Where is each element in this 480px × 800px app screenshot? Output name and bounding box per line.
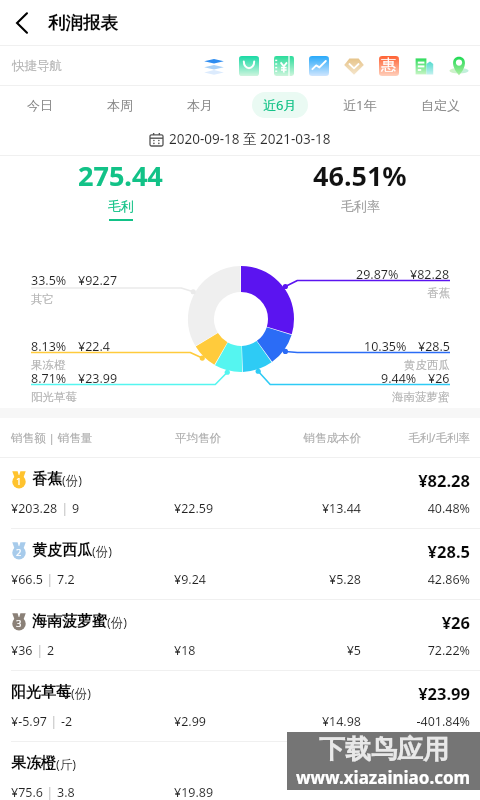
staticText: 7.2 — [57, 571, 75, 588]
staticText: 本周 — [107, 97, 133, 113]
staticText: 近6月 — [263, 96, 297, 114]
staticText: ¥5.28 — [329, 571, 361, 588]
staticText: 本月 — [187, 97, 213, 113]
staticText: www.xiazainiao.com — [296, 766, 471, 789]
button[interactable]: 近1年 — [320, 86, 400, 123]
staticText: 海南菠萝蜜 — [392, 390, 450, 404]
button[interactable]: 优惠 — [371, 46, 406, 85]
staticText: ¥66.5 — [11, 571, 43, 588]
staticText: 香蕉 — [427, 286, 450, 300]
button[interactable]: 1 — [0, 458, 480, 528]
staticText: ¥22.4 — [78, 338, 110, 355]
staticText: 毛利率 — [341, 198, 380, 214]
staticText: ¥28.5 — [418, 338, 450, 355]
staticText: ¥26 — [428, 370, 450, 387]
staticText: ¥92.27 — [78, 272, 118, 289]
staticText: 9.44% — [381, 370, 417, 387]
staticText: ¥5 — [346, 642, 361, 659]
button[interactable]: 果冻橙 — [0, 742, 480, 800]
staticText: 阳光草莓 — [11, 683, 71, 702]
staticText: 8.71% — [31, 370, 67, 387]
button[interactable]: 本周 — [80, 86, 160, 123]
staticText: (斤) — [56, 756, 77, 773]
staticText: 黄皮西瓜 — [404, 358, 450, 372]
staticText: 33.5% — [31, 272, 67, 289]
staticText: 果冻橙 — [11, 754, 56, 773]
staticText: (份) — [92, 543, 113, 560]
staticText: ¥19.89 — [174, 784, 214, 800]
staticText: ¥13.44 — [321, 500, 361, 517]
staticText: | — [33, 642, 47, 659]
staticText: ¥18 — [174, 642, 196, 659]
staticText: 黄皮西瓜 — [32, 541, 92, 560]
button[interactable]: 自定义 — [400, 86, 480, 123]
staticText: 销售成本价 — [303, 431, 361, 445]
staticText: 2020-09-18 至 2021-03-18 — [169, 130, 331, 148]
staticText: 毛利 — [108, 198, 134, 214]
button[interactable]: 会员 — [336, 46, 371, 85]
staticText: | — [58, 500, 72, 517]
staticText: ¥203.28 — [11, 500, 58, 517]
staticText: ¥23.99 — [418, 682, 470, 704]
staticText: 40.48% — [427, 500, 470, 517]
staticText: 72.22% — [427, 642, 470, 659]
button[interactable]: 2020-09-18 至 2021-03-18 — [0, 123, 480, 155]
staticText: 阳光草莓 — [31, 390, 77, 404]
staticText: ¥9.24 — [174, 571, 206, 588]
staticText: | — [43, 784, 57, 800]
button[interactable]: 2 — [0, 529, 480, 599]
button[interactable]: 报表 — [301, 46, 336, 85]
staticText: 29.87% — [356, 266, 399, 283]
button[interactable]: 门店 — [441, 46, 476, 85]
button[interactable]: 今日 — [0, 86, 80, 123]
staticText: ¥26 — [441, 611, 470, 633]
staticText: 自定义 — [421, 97, 460, 113]
staticText: 46.51% — [313, 157, 407, 194]
staticText: | — [47, 713, 61, 730]
button[interactable]: 近6月 — [240, 86, 320, 123]
button[interactable]: 3 — [0, 600, 480, 670]
staticText: 3 — [16, 617, 22, 630]
staticText: 9 — [72, 500, 80, 517]
staticText: 近1年 — [343, 96, 377, 114]
button[interactable]: 275.44 — [0, 156, 240, 234]
staticText: 快捷导航 — [12, 58, 62, 74]
staticText: ¥22.59 — [174, 500, 214, 517]
staticText: (份) — [71, 685, 92, 702]
staticText: ¥-5.97 — [11, 713, 47, 730]
staticText: -2 — [61, 713, 73, 730]
staticText: ¥82.28 — [410, 266, 450, 283]
staticText: ¥82.28 — [418, 469, 470, 491]
staticText: (份) — [62, 472, 83, 489]
button[interactable]: 本月 — [160, 86, 240, 123]
staticText: 275.44 — [78, 157, 163, 194]
staticText: 8.13% — [31, 338, 67, 355]
staticText: 销售额 | 销售量 — [11, 430, 93, 446]
staticText: 海南菠萝蜜 — [32, 612, 107, 631]
button[interactable]: 单据 — [406, 46, 441, 85]
staticText: 平均售价 — [175, 431, 221, 445]
staticText: 惠 — [381, 56, 396, 75]
staticText: 10.35% — [364, 338, 407, 355]
button[interactable]: Back — [0, 0, 45, 45]
staticText: ¥23.99 — [78, 370, 118, 387]
staticText: 果冻橙 — [31, 358, 66, 372]
staticText: 香蕉 — [32, 470, 62, 489]
button[interactable]: 阳光草莓 — [0, 671, 480, 741]
button[interactable]: 商品 — [196, 46, 231, 85]
staticText: 其它 — [31, 292, 54, 306]
staticText: ¥75.6 — [11, 784, 43, 800]
staticText: 今日 — [27, 97, 53, 113]
staticText: | — [43, 571, 57, 588]
button[interactable]: 账本 — [266, 46, 301, 85]
button[interactable]: 采购 — [231, 46, 266, 85]
staticText: 2 — [16, 546, 22, 559]
staticText: 利润报表 — [48, 12, 118, 34]
staticText: 3.8 — [57, 784, 75, 800]
staticText: ¥36 — [11, 642, 33, 659]
staticText: 1 — [16, 475, 22, 488]
button[interactable]: 46.51% — [240, 156, 480, 234]
staticText: ¥2.99 — [174, 713, 206, 730]
staticText: (份) — [107, 614, 128, 631]
staticText: ¥28.5 — [427, 540, 470, 562]
